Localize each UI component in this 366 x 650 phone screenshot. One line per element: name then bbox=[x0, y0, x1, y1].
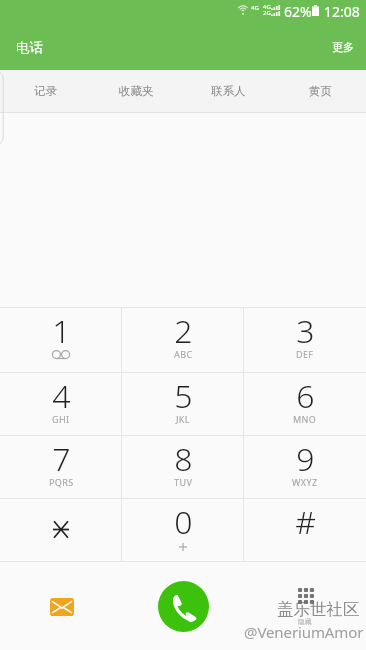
staticText: 记录 bbox=[34, 84, 57, 98]
staticText: 联系人 bbox=[211, 84, 246, 98]
button[interactable]: 6 bbox=[244, 373, 366, 435]
button[interactable]: 2 bbox=[122, 308, 244, 372]
button[interactable]: 收藏夹 bbox=[91, 70, 182, 112]
staticText: 8 bbox=[174, 437, 193, 481]
button[interactable]: 更多 bbox=[312, 0, 366, 64]
staticText: 隐藏 bbox=[298, 617, 312, 626]
button[interactable]: 3 bbox=[244, 308, 366, 372]
button[interactable]: Message bbox=[39, 584, 84, 629]
staticText: 收藏夹 bbox=[119, 84, 154, 98]
button[interactable]: 4 bbox=[0, 373, 122, 435]
staticText: DEF bbox=[296, 348, 314, 360]
staticText: 9 bbox=[296, 437, 315, 481]
button[interactable]: Keypad bbox=[283, 573, 328, 618]
staticText: GHI bbox=[52, 413, 70, 425]
button[interactable]: 1 bbox=[0, 308, 122, 372]
button[interactable]: 联系人 bbox=[182, 70, 274, 112]
staticText: WXYZ bbox=[292, 476, 318, 488]
staticText: 2 bbox=[174, 309, 193, 353]
staticText: 4G bbox=[251, 4, 259, 12]
button[interactable]: # bbox=[244, 499, 366, 561]
button[interactable]: 0 bbox=[122, 499, 244, 561]
staticText: 0 bbox=[174, 500, 193, 544]
staticText: JKL bbox=[176, 413, 190, 425]
staticText: ABC bbox=[174, 348, 193, 360]
button[interactable]: 5 bbox=[122, 373, 244, 435]
staticText: TUV bbox=[174, 476, 193, 488]
staticText: 6 bbox=[296, 374, 315, 418]
staticText: PQRS bbox=[49, 476, 74, 488]
button[interactable]: Call bbox=[158, 581, 209, 632]
button[interactable] bbox=[0, 499, 122, 561]
staticText: 盖乐世社区 bbox=[277, 599, 360, 620]
staticText: 12:08 bbox=[324, 2, 360, 21]
button[interactable]: 记录 bbox=[0, 70, 91, 112]
staticText: 2G bbox=[263, 9, 271, 15]
staticText: 7 bbox=[52, 437, 71, 481]
staticText: # bbox=[295, 500, 316, 544]
staticText: 黄页 bbox=[309, 84, 332, 98]
button[interactable]: 黄页 bbox=[274, 70, 366, 112]
staticText: 电话 bbox=[16, 39, 43, 56]
staticText: 3 bbox=[296, 309, 315, 353]
staticText: 4 bbox=[52, 374, 71, 418]
staticText: MNO bbox=[293, 413, 317, 425]
staticText: 更多 bbox=[332, 40, 354, 54]
staticText: @VeneriumAmor bbox=[244, 622, 364, 642]
staticText: 5 bbox=[174, 374, 193, 418]
button[interactable]: 7 bbox=[0, 436, 122, 498]
staticText: 4G bbox=[263, 3, 271, 9]
button[interactable]: 8 bbox=[122, 436, 244, 498]
staticText: 1 bbox=[52, 309, 71, 353]
button[interactable]: 9 bbox=[244, 436, 366, 498]
staticText: 62% bbox=[284, 2, 312, 21]
